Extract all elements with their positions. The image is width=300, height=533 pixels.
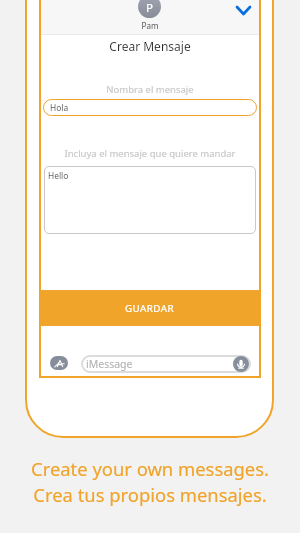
button[interactable]: GUARDAR [39, 290, 261, 326]
staticText: GUARDAR [125, 302, 175, 315]
button[interactable]: Apps [50, 356, 68, 370]
staticText: Hola [50, 102, 69, 113]
button[interactable]: Hola [43, 99, 257, 116]
button[interactable]: iMessage [81, 355, 251, 373]
staticText: Nombra el mensaje [39, 83, 261, 96]
staticText: P [146, 0, 154, 16]
button[interactable]: Hello [44, 166, 256, 234]
staticText: Pam [130, 20, 170, 31]
staticText: Incluya el mensaje que quiere mandar [39, 147, 261, 160]
staticText: Create your own messages. [31, 456, 269, 481]
staticText: iMessage [86, 357, 133, 371]
button[interactable]: Dictate [233, 356, 249, 372]
button[interactable]: Expand details [235, 5, 252, 16]
staticText: Crea tus propios mensajes. [33, 482, 267, 507]
staticText: Crear Mensaje [39, 38, 261, 54]
staticText: Hello [48, 170, 69, 181]
button[interactable]: P [138, 0, 161, 18]
